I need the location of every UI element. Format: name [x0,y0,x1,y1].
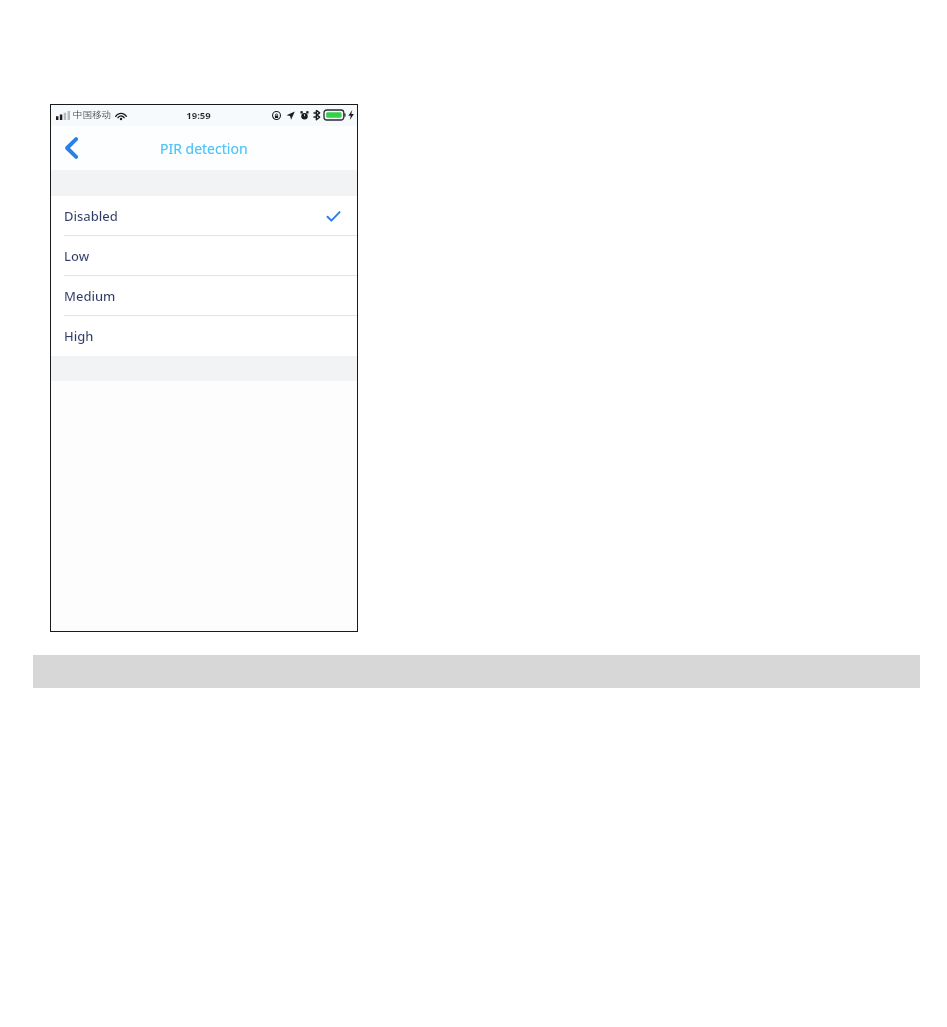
button[interactable]: Disabled [50,196,358,236]
staticText: PIR detection [160,139,248,158]
staticText: Medium [64,287,116,305]
staticText: Disabled [64,207,118,225]
button[interactable]: High [50,316,358,356]
staticText: 19:59 [186,109,211,122]
button[interactable]: Back [50,126,92,170]
button[interactable]: Low [50,236,358,276]
staticText: High [64,327,94,345]
staticText: Low [64,247,90,265]
button[interactable]: Medium [50,276,358,316]
staticText: 中国移动 [73,109,111,121]
